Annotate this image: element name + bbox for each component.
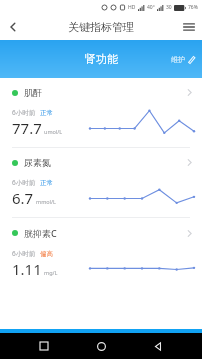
button[interactable]: 维护 [171,55,196,64]
button[interactable]: 肌酐 [0,78,202,147]
button[interactable]: Back [0,14,26,40]
button[interactable]: Back [145,333,171,359]
button[interactable]: Recents [31,333,57,359]
staticText: 尿素氮 [24,157,51,168]
staticText: 6小时前 [12,178,36,187]
staticText: 关键指标管理 [68,20,134,34]
staticText: 30 [166,4,172,11]
staticText: 6小时前 [12,108,36,117]
staticText: 维护 [171,55,185,64]
staticText: 肌酐 [24,87,42,98]
staticText: HD [128,4,136,11]
staticText: 6.7 [12,188,34,208]
staticText: 正常 [40,109,53,117]
staticText: 40° [147,4,155,11]
staticText: 1.11 [12,259,42,279]
button[interactable]: 胱抑素C [0,218,202,288]
button[interactable]: Home [88,333,114,359]
staticText: umol/L [44,128,63,135]
staticText: 偏高 [40,250,53,258]
staticText: 77.7 [12,118,42,138]
staticText: 76% [188,4,198,11]
staticText: 胱抑素C [24,227,57,239]
button[interactable]: 尿素氮 [0,148,202,217]
staticText: mmol/L [36,198,56,205]
staticText: 6小时前 [12,249,36,258]
button[interactable]: Menu [176,14,202,40]
staticText: mg/L [44,269,58,276]
staticText: 肾功能 [85,52,118,66]
staticText: 正常 [40,179,53,187]
